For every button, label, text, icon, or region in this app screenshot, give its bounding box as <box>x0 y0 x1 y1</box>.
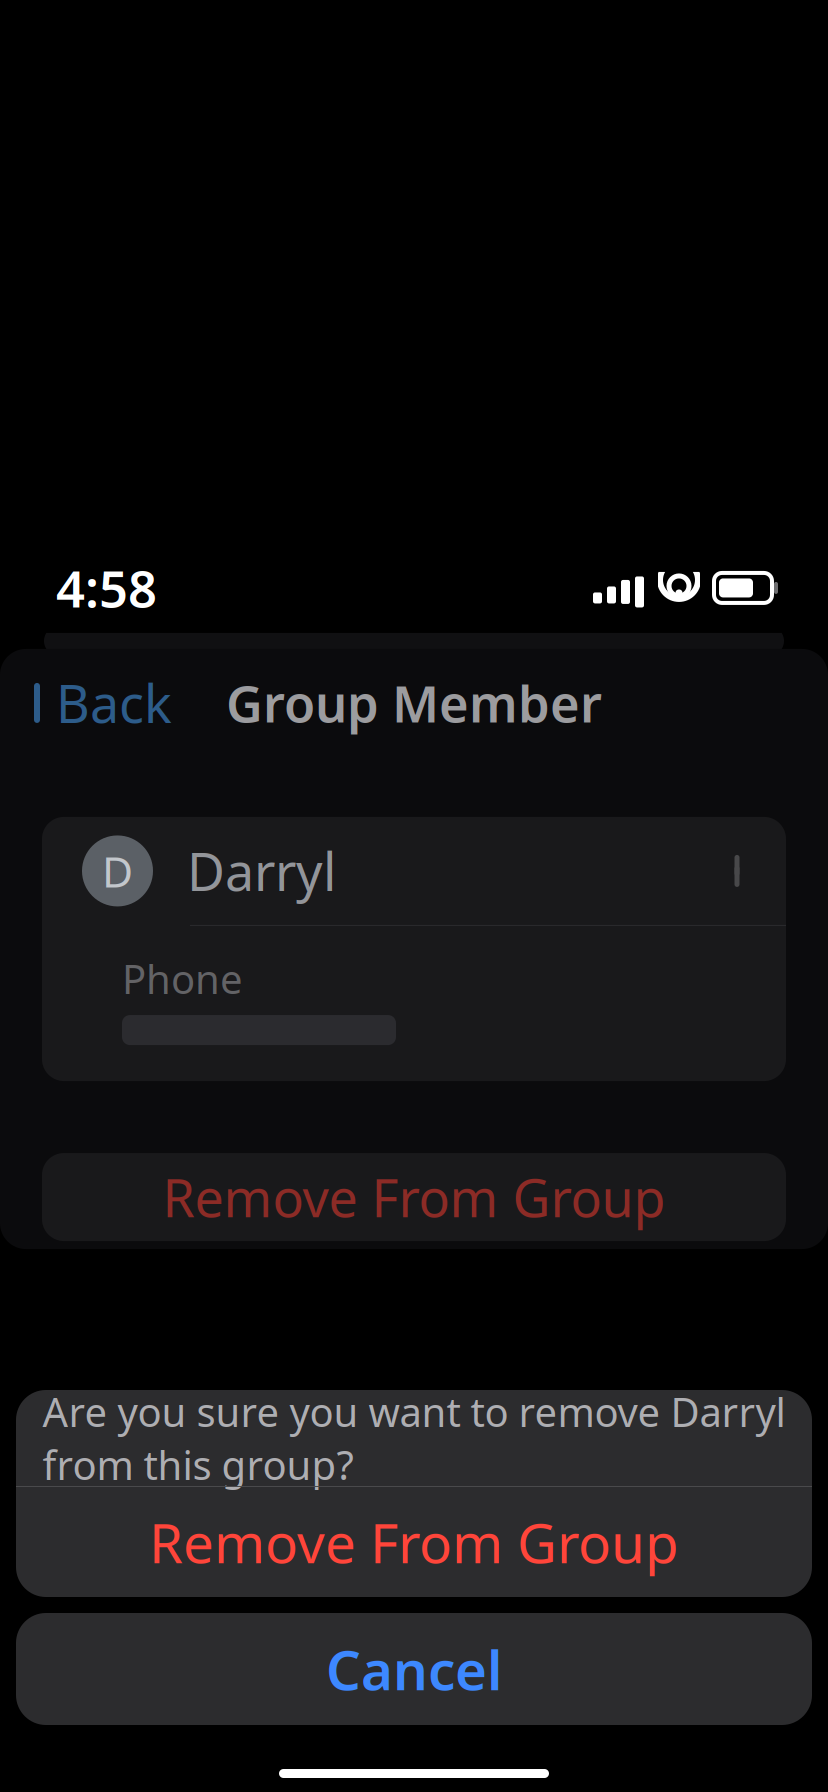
button[interactable]: D <box>42 817 786 925</box>
staticText: Remove From Group <box>162 1162 665 1232</box>
staticText: Cancel <box>326 1633 502 1705</box>
staticText: 4:58 <box>56 554 157 622</box>
button[interactable]: Remove From Group <box>16 1487 812 1597</box>
staticText: Phone <box>122 952 243 1005</box>
staticText: Group Member <box>226 669 602 737</box>
staticText: Darryl <box>187 836 336 905</box>
staticText: Remove From Group <box>149 1506 679 1578</box>
button[interactable]: Cancel <box>16 1613 812 1725</box>
staticText: Are you sure you want to remove Darryl f… <box>42 1385 785 1491</box>
staticText: D <box>102 843 133 899</box>
staticText: Back <box>56 668 172 737</box>
button[interactable]: Back <box>0 654 172 751</box>
button[interactable]: Remove From Group <box>42 1153 786 1241</box>
